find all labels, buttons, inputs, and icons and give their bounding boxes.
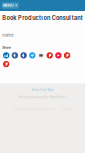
- button[interactable]: Share: [3, 52, 9, 59]
- button[interactable]: Share: [3, 61, 9, 67]
- staticText: Share: [2, 46, 11, 50]
- button[interactable]: Share: [55, 52, 62, 59]
- button[interactable]: Share: [20, 52, 27, 59]
- button[interactable]: Share: [12, 52, 18, 59]
- button[interactable]: Share: [46, 52, 53, 59]
- staticText: Book Production Consultant: [2, 15, 83, 21]
- button[interactable]: MENU: [2, 2, 19, 9]
- button[interactable]: Share: [64, 52, 70, 59]
- button[interactable]: Share: [38, 52, 44, 59]
- button[interactable]: View Full Site: [31, 88, 53, 92]
- staticText: Home: [2, 33, 13, 38]
- staticText: View Full Site: [31, 88, 53, 92]
- staticText: Proudly powered by WordPress: [18, 95, 67, 99]
- staticText: MENU: [3, 3, 14, 8]
- button[interactable]: Share: [29, 52, 35, 59]
